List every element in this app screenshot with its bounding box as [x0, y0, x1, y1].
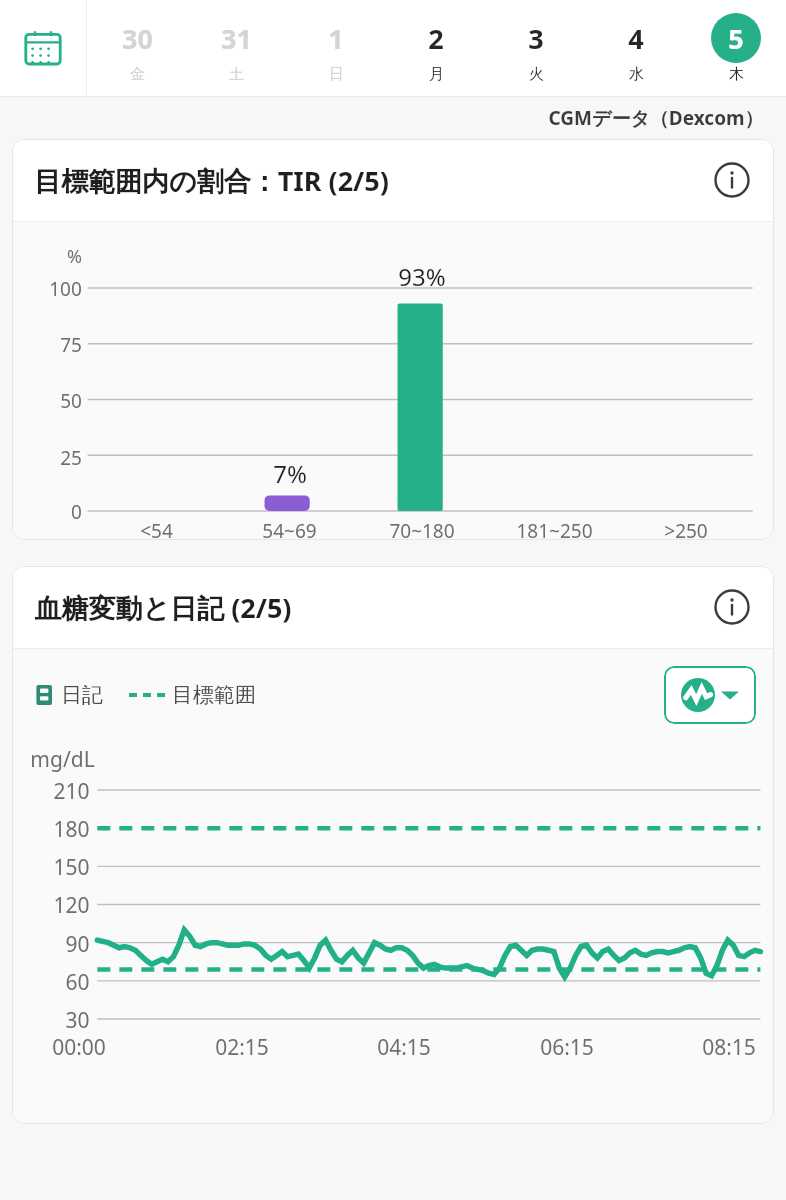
button[interactable]: 31: [186, 0, 286, 96]
staticText: 目標範囲内の割合：TIR (2/5): [34, 162, 389, 199]
staticText: <54: [140, 518, 173, 540]
staticText: 30: [122, 20, 153, 57]
button[interactable]: グラフの種類を選択: [664, 666, 756, 724]
staticText: 04:15: [377, 1033, 431, 1062]
staticText: 210: [53, 777, 90, 806]
staticText: 1: [328, 20, 344, 57]
staticText: 木: [729, 65, 744, 84]
staticText: 00:00: [52, 1033, 106, 1062]
staticText: 75: [60, 332, 82, 358]
staticText: 31: [221, 20, 252, 57]
staticText: 日記: [61, 682, 103, 708]
staticText: 7%: [273, 457, 307, 490]
staticText: 06:15: [540, 1033, 594, 1062]
staticText: 月: [429, 65, 444, 84]
staticText: 土: [229, 65, 244, 84]
button[interactable]: 目標範囲: [129, 682, 256, 708]
staticText: >250: [664, 518, 708, 540]
staticText: 70~180: [389, 518, 455, 540]
staticText: 08:15: [702, 1033, 756, 1062]
staticText: 180: [53, 815, 90, 844]
button[interactable]: 3: [486, 0, 586, 96]
button[interactable]: 日記: [34, 682, 103, 708]
button[interactable]: 情報: [708, 156, 756, 204]
staticText: 目標範囲: [172, 682, 256, 708]
staticText: %: [67, 244, 82, 269]
button[interactable]: 30: [87, 0, 186, 96]
staticText: 120: [53, 891, 90, 920]
button[interactable]: 4: [586, 0, 686, 96]
button[interactable]: 1: [286, 0, 386, 96]
staticText: 日: [329, 65, 344, 84]
staticText: 2: [428, 20, 444, 57]
staticText: 54~69: [262, 518, 317, 540]
staticText: 0: [71, 499, 82, 525]
staticText: 181~250: [516, 518, 593, 540]
staticText: 02:15: [215, 1033, 269, 1062]
staticText: 30: [65, 1006, 90, 1035]
staticText: mg/dL: [30, 745, 95, 774]
staticText: 血糖変動と日記 (2/5): [34, 589, 292, 626]
staticText: 50: [60, 388, 82, 414]
staticText: 5: [728, 20, 744, 57]
staticText: 4: [628, 20, 644, 57]
staticText: 93%: [398, 260, 446, 293]
staticText: CGMデータ（Dexcom）: [548, 105, 764, 131]
button[interactable]: 5: [686, 0, 786, 96]
staticText: 100: [49, 276, 82, 302]
staticText: 90: [65, 930, 90, 959]
button[interactable]: 2: [386, 0, 486, 96]
staticText: 3: [528, 20, 544, 57]
button[interactable]: 情報: [708, 583, 756, 631]
staticText: 25: [60, 445, 82, 471]
staticText: 60: [65, 968, 90, 997]
staticText: 水: [629, 65, 644, 84]
staticText: 150: [53, 853, 90, 882]
staticText: 火: [529, 65, 544, 84]
staticText: 金: [130, 65, 145, 84]
button[interactable]: カレンダー: [0, 0, 86, 96]
